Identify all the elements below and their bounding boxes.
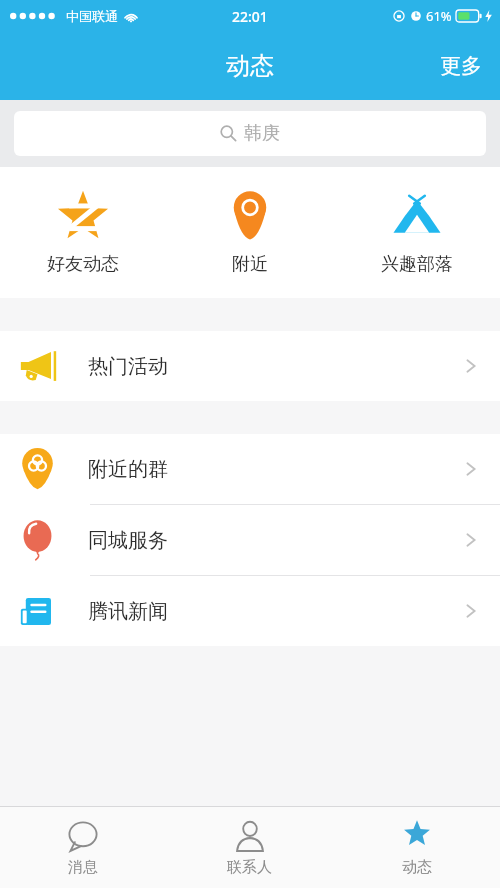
staticText: 中国联通 xyxy=(66,8,118,24)
button[interactable]: 附近的群 xyxy=(0,434,500,504)
staticText: 好友动态 xyxy=(47,253,119,276)
button[interactable]: 热门活动 xyxy=(0,331,500,401)
staticText: 附近 xyxy=(232,253,268,276)
button[interactable]: 腾讯新闻 xyxy=(0,576,500,646)
staticText: 61% xyxy=(426,7,452,25)
staticText: 腾讯新闻 xyxy=(88,599,168,624)
staticText: 22:01 xyxy=(232,7,268,26)
staticText: 附近的群 xyxy=(88,457,168,482)
staticText: 动态 xyxy=(226,51,274,81)
staticText: 兴趣部落 xyxy=(381,253,453,276)
staticText: 联系人 xyxy=(227,858,272,877)
staticText: 消息 xyxy=(68,858,98,877)
button[interactable]: 联系人 xyxy=(166,807,333,888)
button[interactable]: 同城服务 xyxy=(0,505,500,575)
button[interactable]: 韩庚 xyxy=(14,111,486,156)
button[interactable]: 消息 xyxy=(0,807,166,888)
staticText: 同城服务 xyxy=(88,528,168,553)
staticText: 更多 xyxy=(440,53,482,79)
staticText: 动态 xyxy=(402,858,432,877)
button[interactable]: 好友动态 xyxy=(0,167,166,298)
staticText: 韩庚 xyxy=(244,122,280,145)
button[interactable]: 更多 xyxy=(422,43,500,89)
button[interactable]: 附近 xyxy=(166,167,333,298)
button[interactable]: 动态 xyxy=(333,807,500,888)
staticText: 热门活动 xyxy=(88,354,168,379)
button[interactable]: 兴趣部落 xyxy=(333,167,500,298)
